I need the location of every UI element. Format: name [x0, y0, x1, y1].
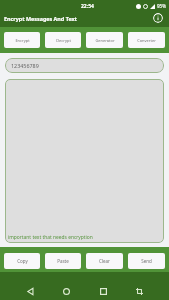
button[interactable]: Converter	[128, 32, 165, 48]
staticText: 22:54	[81, 3, 94, 10]
staticText: 95%	[157, 3, 166, 9]
button[interactable]: 123456789	[5, 58, 164, 73]
staticText: Decrypt	[56, 38, 71, 43]
staticText: Paste	[57, 258, 69, 264]
button[interactable]: Back	[21, 284, 39, 298]
staticText: important text that needs encryption	[8, 234, 93, 241]
staticText: Encrypt	[15, 38, 30, 43]
button[interactable]: Home	[57, 284, 75, 298]
button[interactable]: Decrypt	[45, 32, 81, 48]
staticText: 123456789	[11, 62, 39, 69]
staticText: Copy	[17, 258, 28, 264]
button[interactable]: Recents	[94, 284, 112, 298]
staticText: Converter	[137, 38, 156, 43]
staticText: Send	[141, 258, 152, 264]
button[interactable]: Encrypt	[4, 32, 40, 48]
button[interactable]: Info	[153, 13, 163, 23]
button[interactable]: important text that needs encryption	[5, 79, 164, 243]
staticText: Generator	[95, 38, 115, 43]
staticText: Clear	[99, 258, 110, 264]
button[interactable]: Clear	[86, 253, 123, 269]
button[interactable]: Copy	[4, 253, 40, 269]
button[interactable]: Paste	[45, 253, 81, 269]
button[interactable]: Screenshot	[130, 284, 148, 298]
button[interactable]: Send	[128, 253, 165, 269]
staticText: Encrypt Messages And Text	[4, 15, 77, 22]
button[interactable]: Generator	[86, 32, 123, 48]
